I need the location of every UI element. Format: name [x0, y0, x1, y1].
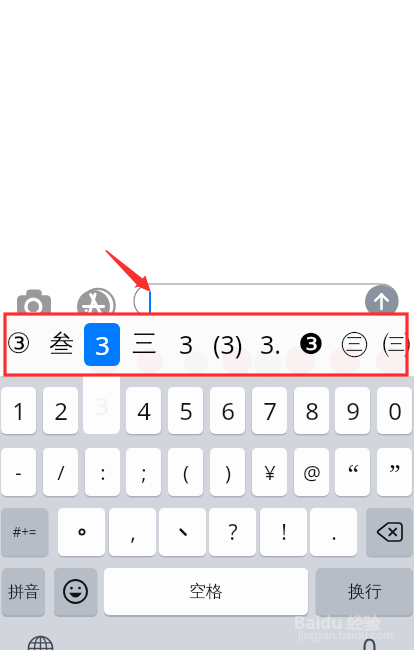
staticText: 3	[95, 389, 109, 422]
staticText: :	[100, 459, 106, 486]
button[interactable]: Delete	[366, 508, 413, 556]
button[interactable]: 叁	[40, 322, 82, 365]
staticText: 0	[388, 394, 402, 427]
staticText: 9	[346, 394, 360, 427]
staticText: 6	[221, 394, 235, 427]
button[interactable]: !	[260, 508, 307, 556]
button[interactable]: -	[1, 448, 36, 496]
staticText: ㈢	[382, 325, 411, 362]
staticText: “	[347, 455, 359, 490]
staticText: 3.	[260, 327, 282, 361]
button[interactable]: 8	[294, 387, 329, 434]
button[interactable]: ”	[377, 448, 412, 496]
staticText: ㊂	[340, 325, 369, 362]
button[interactable]: 4	[126, 387, 161, 434]
button[interactable]: 空格	[104, 568, 308, 615]
staticText: -	[15, 459, 22, 486]
button[interactable]: ;	[126, 448, 161, 496]
button[interactable]: Emoji	[54, 568, 97, 615]
staticText: ;	[141, 459, 147, 486]
button[interactable]: 0	[377, 387, 412, 434]
staticText: @	[303, 459, 321, 486]
staticText: !	[281, 518, 287, 547]
button[interactable]: (	[168, 448, 203, 496]
staticText: 3	[179, 327, 194, 361]
staticText: 7	[263, 394, 277, 427]
button[interactable]: #+=	[1, 508, 48, 556]
button[interactable]: 三	[123, 322, 165, 365]
staticText: ¥	[264, 459, 276, 486]
staticText: ③	[6, 327, 32, 360]
button[interactable]: 3	[83, 376, 120, 434]
staticText: )	[225, 459, 231, 486]
staticText: 三	[132, 328, 157, 359]
button[interactable]: ㈢	[375, 322, 414, 365]
staticText: 2	[54, 394, 68, 427]
staticText: Baidu 经验	[294, 611, 381, 634]
staticText: 8	[305, 394, 319, 427]
button[interactable]: 3	[165, 322, 207, 365]
button[interactable]: 3	[84, 323, 120, 366]
staticText: (3)	[213, 327, 243, 361]
other: Delete	[377, 523, 402, 541]
button[interactable]: 5	[168, 387, 203, 434]
staticText: ?	[228, 518, 238, 547]
button[interactable]	[159, 508, 206, 556]
button[interactable]: :	[85, 448, 120, 496]
staticText: (	[183, 459, 189, 486]
staticText: 拼音	[8, 582, 40, 602]
button[interactable]: ③	[0, 322, 40, 365]
button[interactable]: @	[294, 448, 329, 496]
button[interactable]: 9	[335, 387, 370, 434]
staticText: 5	[179, 394, 193, 427]
button[interactable]: .	[310, 508, 357, 556]
button[interactable]: /	[43, 448, 78, 496]
button[interactable]: ㊂	[333, 322, 375, 365]
staticText: #+=	[12, 523, 37, 541]
button[interactable]: 拼音	[2, 568, 45, 615]
staticText: 叁	[49, 328, 74, 359]
button[interactable]: )	[210, 448, 245, 496]
button[interactable]: ,	[109, 508, 156, 556]
button[interactable]: ?	[209, 508, 256, 556]
button[interactable]: 3.	[250, 322, 292, 365]
button[interactable]: Send	[365, 285, 398, 318]
staticText: 4	[137, 394, 151, 427]
button[interactable]	[134, 284, 398, 318]
button[interactable]: App Store	[77, 290, 110, 323]
staticText: jingyan.baidu.com	[298, 627, 394, 642]
button[interactable]	[58, 508, 105, 556]
button[interactable]: 7	[252, 387, 287, 434]
staticText: 1	[12, 394, 26, 427]
button[interactable]: ❸	[290, 322, 332, 365]
button[interactable]: ¥	[252, 448, 287, 496]
staticText: .	[331, 518, 337, 547]
staticText: 3	[95, 327, 110, 362]
staticText: ,	[130, 518, 136, 547]
button[interactable]: 换行	[316, 568, 413, 615]
staticText: 换行	[348, 581, 382, 602]
staticText: ❸	[298, 327, 324, 361]
staticText: 空格	[189, 581, 223, 602]
button[interactable]: (3)	[207, 322, 249, 365]
staticText: ”	[389, 455, 401, 490]
button[interactable]: 1	[1, 387, 36, 434]
button[interactable]: 2	[43, 387, 78, 434]
button[interactable]: 6	[210, 387, 245, 434]
button[interactable]: “	[335, 448, 370, 496]
other: Emoji	[63, 579, 88, 604]
staticText: /	[57, 459, 65, 486]
